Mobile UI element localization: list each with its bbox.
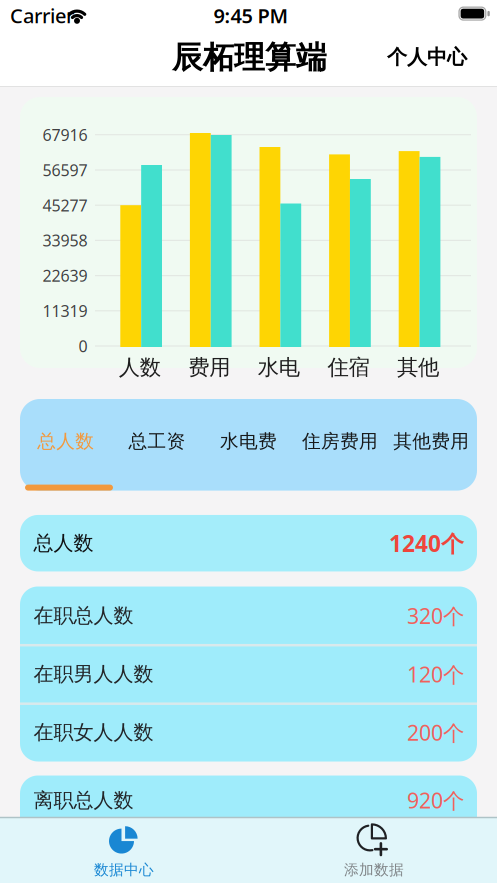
staticText: 在职男人人数 <box>33 662 153 686</box>
staticText: 9:45 PM <box>213 2 288 29</box>
button[interactable]: 水电费 <box>203 430 294 453</box>
staticText: 总人数 <box>33 531 93 555</box>
staticText: 其他费用 <box>393 430 469 453</box>
staticText: 总人数 <box>37 430 94 453</box>
staticText: 在职女人人数 <box>33 720 153 745</box>
button[interactable]: 总人数 <box>20 430 111 453</box>
staticText: 水电 <box>258 354 300 381</box>
staticText: 住房费用 <box>302 430 378 453</box>
button[interactable]: 个人中心 <box>347 45 467 69</box>
button[interactable]: 添加数据 <box>299 820 449 882</box>
staticText: 总工资 <box>129 430 186 453</box>
staticText: 0 <box>78 335 87 357</box>
staticText: 1240个 <box>389 528 464 558</box>
staticText: 离职总人数 <box>33 788 133 813</box>
staticText: 其他 <box>397 354 439 381</box>
staticText: 11319 <box>42 300 87 321</box>
staticText: 添加数据 <box>344 861 404 879</box>
staticText: 33958 <box>42 230 87 251</box>
button[interactable]: 数据中心 <box>49 820 199 882</box>
staticText: 辰柘理算端 <box>172 39 327 76</box>
staticText: 920个 <box>407 786 464 814</box>
staticText: 320个 <box>407 601 464 630</box>
staticText: 在职总人数 <box>33 603 133 628</box>
staticText: 个人中心 <box>387 45 467 69</box>
staticText: 45277 <box>42 195 87 216</box>
staticText: 22639 <box>42 265 87 286</box>
staticText: 费用 <box>188 354 230 381</box>
staticText: Carrier <box>10 2 74 29</box>
staticText: 56597 <box>42 159 87 181</box>
button[interactable]: 住房费用 <box>294 430 386 453</box>
button[interactable]: 总工资 <box>111 430 203 453</box>
button[interactable]: 其他费用 <box>386 430 477 453</box>
staticText: 200个 <box>407 718 464 746</box>
staticText: 住宿 <box>327 354 369 381</box>
staticText: 水电费 <box>220 430 277 453</box>
staticText: 120个 <box>407 660 464 688</box>
staticText: 67916 <box>42 124 87 145</box>
staticText: 数据中心 <box>94 861 154 879</box>
staticText: 人数 <box>119 354 161 381</box>
